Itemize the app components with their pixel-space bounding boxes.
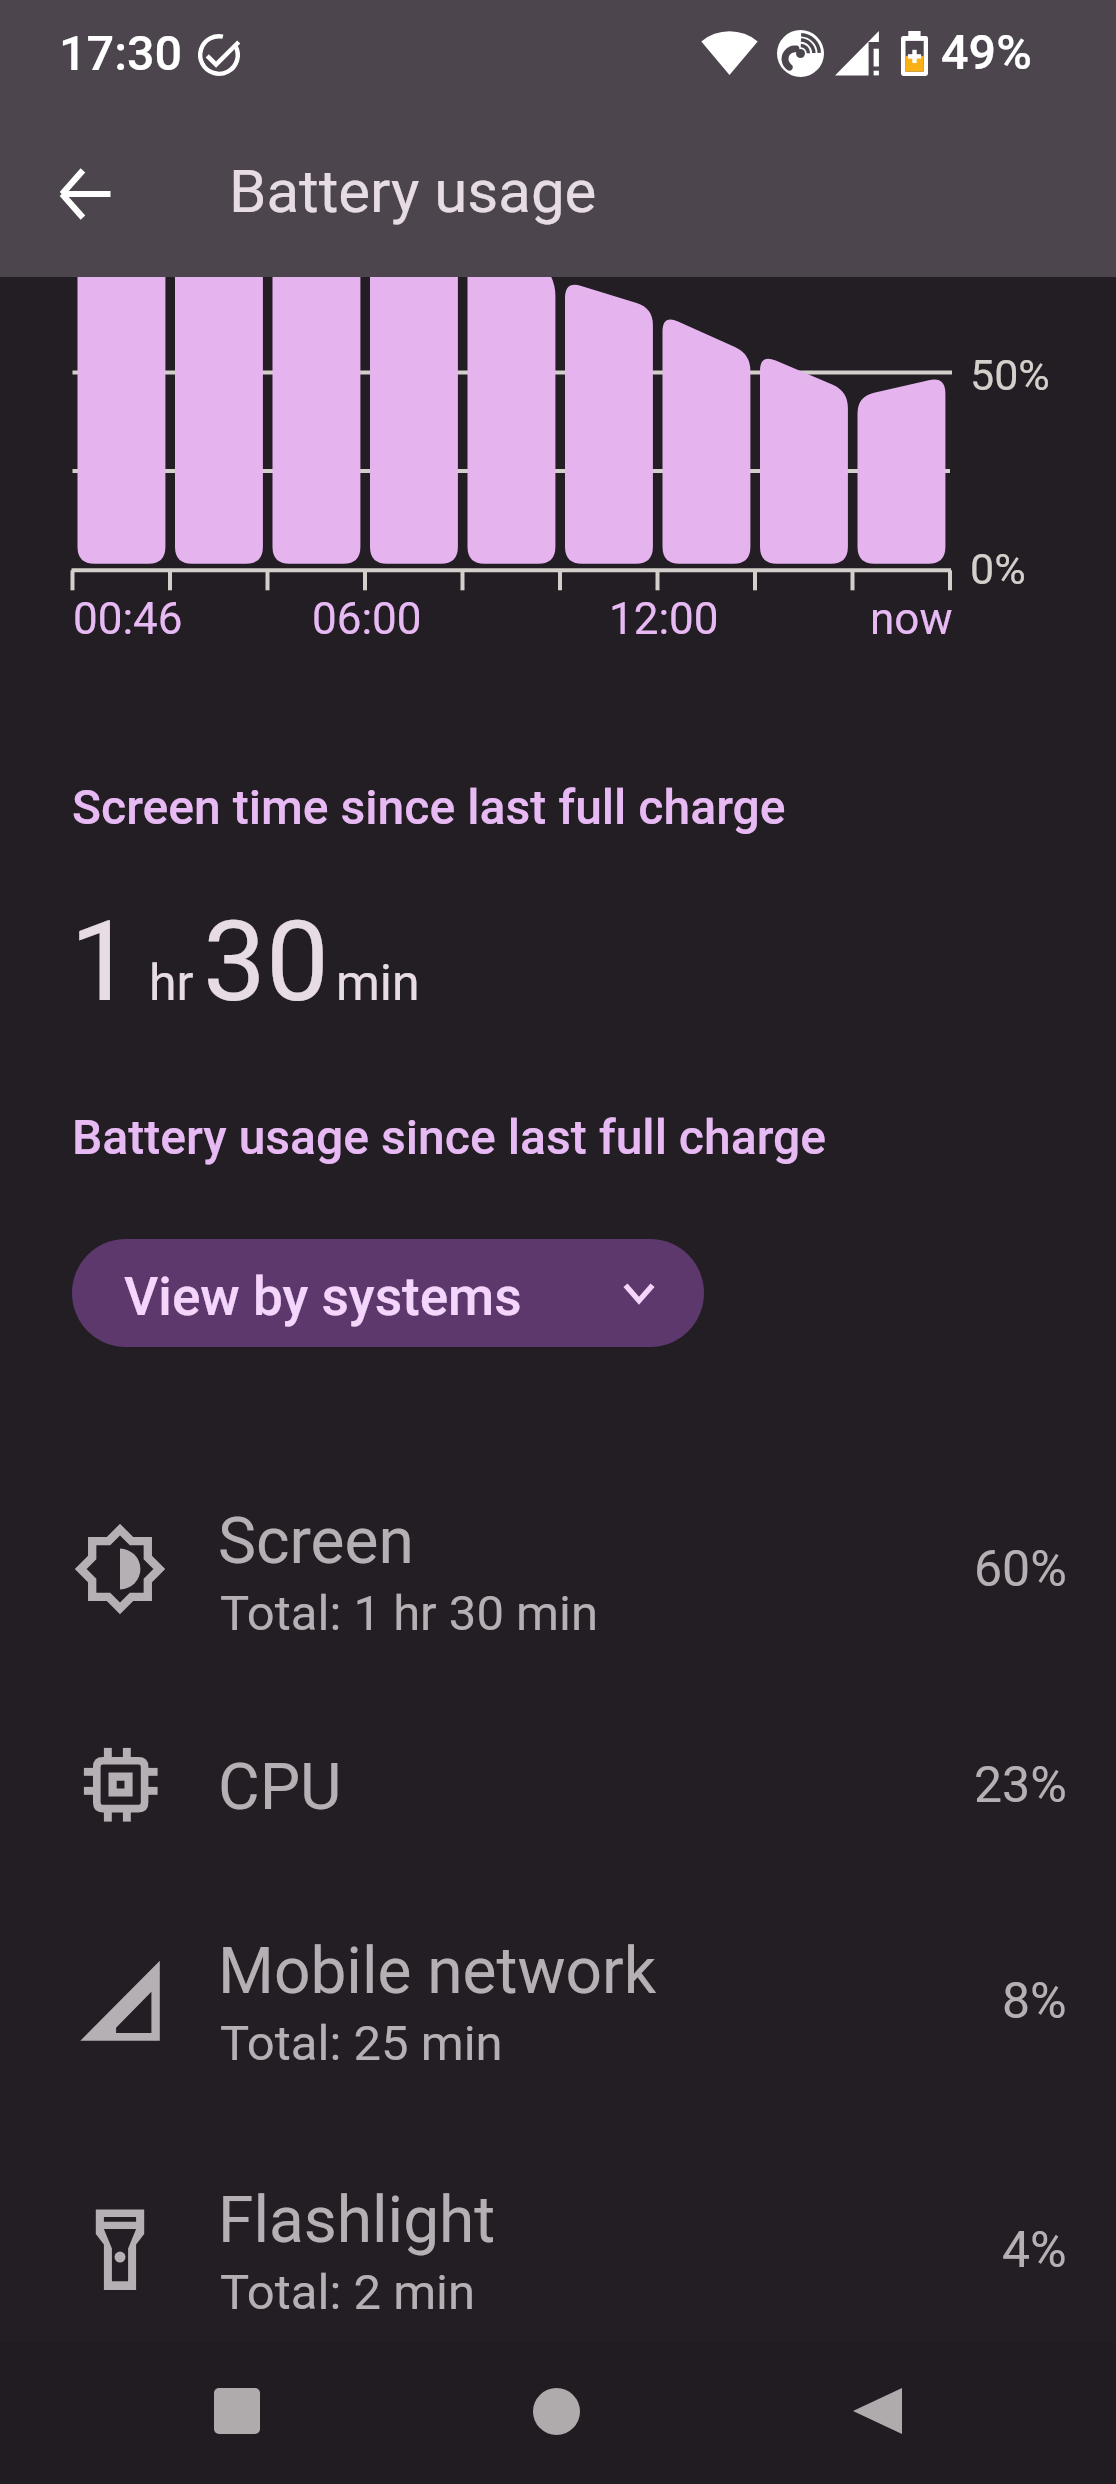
staticText: 0% bbox=[970, 544, 1026, 594]
staticText: 49% bbox=[941, 24, 1032, 81]
button[interactable]: Navigate up bbox=[30, 139, 139, 248]
button[interactable]: Recent apps bbox=[174, 2348, 300, 2474]
staticText: Battery usage since last full charge bbox=[72, 1109, 827, 1165]
staticText: Screen bbox=[218, 1504, 414, 1579]
staticText: 50% bbox=[970, 350, 1050, 400]
staticText: 30 bbox=[203, 896, 329, 1027]
staticText: Total: 25 min bbox=[220, 2015, 503, 2072]
staticText: Screen time since last full charge bbox=[72, 779, 786, 835]
staticText: Battery usage bbox=[229, 156, 597, 226]
staticText: 17:30 bbox=[59, 25, 183, 82]
button[interactable]: Screen bbox=[0, 1460, 1116, 1680]
staticText: 23% bbox=[974, 1756, 1067, 1815]
staticText: 06:00 bbox=[312, 593, 422, 645]
staticText: min bbox=[336, 954, 420, 1013]
staticText: 60% bbox=[974, 1540, 1067, 1599]
staticText: 8% bbox=[1002, 1972, 1067, 2031]
button[interactable]: CPU bbox=[0, 1680, 1116, 1890]
staticText: 12:00 bbox=[609, 593, 719, 645]
staticText: 00:46 bbox=[73, 593, 183, 645]
staticText: now bbox=[870, 593, 953, 645]
staticText: 1 bbox=[70, 896, 133, 1027]
staticText: View by systems bbox=[124, 1266, 522, 1328]
staticText: Total: 2 min bbox=[220, 2264, 476, 2321]
staticText: 4% bbox=[1002, 2221, 1067, 2280]
staticText: hr bbox=[149, 954, 194, 1013]
staticText: Mobile network bbox=[218, 1934, 657, 2009]
button[interactable]: Home bbox=[493, 2348, 619, 2474]
staticText: Total: 1 hr 30 min bbox=[220, 1585, 599, 1642]
button[interactable]: Flashlight bbox=[0, 2130, 1116, 2342]
button[interactable]: Back bbox=[814, 2348, 940, 2474]
button[interactable]: Mobile network bbox=[0, 1890, 1116, 2110]
staticText: Flashlight bbox=[218, 2183, 496, 2258]
button[interactable]: View by systems bbox=[72, 1239, 704, 1347]
staticText: CPU bbox=[218, 1750, 342, 1825]
